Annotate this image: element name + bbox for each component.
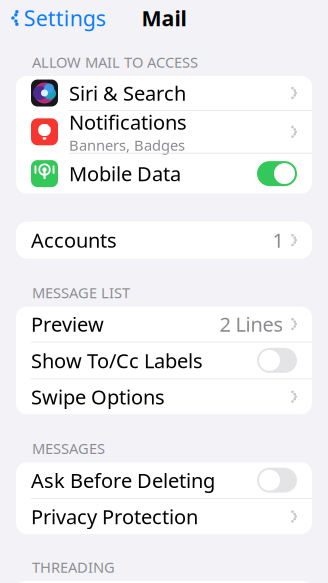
staticText: THREADING (32, 557, 115, 577)
staticText: Notifications (69, 109, 187, 135)
button[interactable]: Show To/Cc Labels (16, 342, 312, 378)
staticText: Show To/Cc Labels (31, 347, 203, 374)
staticText: Mail (141, 4, 186, 32)
staticText: MESSAGE LIST (32, 283, 130, 302)
button[interactable]: Preview (16, 307, 312, 342)
staticText: MESSAGES (32, 438, 105, 458)
staticText: Privacy Protection (31, 503, 198, 530)
button[interactable]: Swipe Options (16, 379, 312, 414)
staticText: ALLOW MAIL TO ACCESS (32, 52, 198, 72)
staticText: Settings (24, 4, 106, 32)
button[interactable]: Mobile Data (16, 154, 312, 194)
staticText: 2 Lines (219, 311, 283, 337)
staticText: Mobile Data (69, 160, 181, 187)
button[interactable]: Siri & Search (16, 76, 312, 110)
staticText: Siri & Search (69, 80, 186, 106)
staticText: 1 (272, 227, 283, 253)
staticText: Banners, Badges (69, 135, 185, 155)
button[interactable]: Privacy Protection (16, 499, 312, 534)
button[interactable]: Ask Before Deleting (16, 462, 312, 498)
button[interactable]: Accounts (16, 222, 312, 259)
staticText: Preview (31, 311, 104, 337)
staticText: Ask Before Deleting (31, 467, 215, 493)
button[interactable]: Settings (0, 0, 114, 39)
staticText: Accounts (31, 227, 117, 253)
staticText: Swipe Options (31, 383, 165, 410)
button[interactable]: Notifications (16, 111, 312, 153)
